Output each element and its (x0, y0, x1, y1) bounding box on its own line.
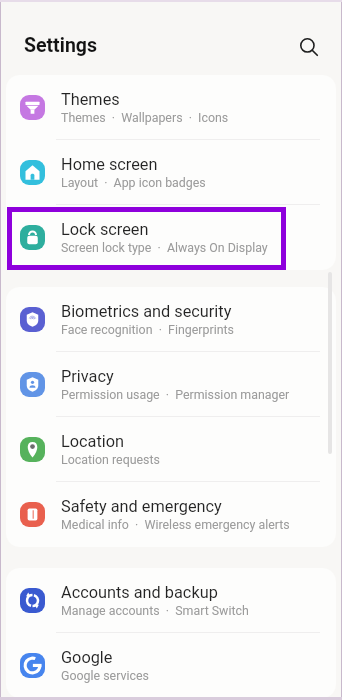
staticText: Settings (24, 34, 97, 57)
button[interactable]: Safety and emergency (6, 482, 336, 547)
staticText: Layout · App icon badges (61, 175, 206, 190)
button[interactable]: Privacy (6, 352, 336, 417)
staticText: Google (61, 648, 113, 667)
staticText: Manage accounts · Smart Switch (61, 603, 249, 618)
button[interactable]: Themes (6, 75, 336, 140)
button[interactable]: Google (6, 633, 336, 698)
button[interactable]: Home screen (6, 140, 336, 205)
staticText: Screen lock type · Always On Display (61, 240, 268, 255)
staticText: Location (61, 432, 125, 451)
staticText: Location requests (61, 452, 160, 467)
staticText: Privacy (61, 367, 114, 386)
staticText: Biometrics and security (61, 302, 232, 321)
button[interactable]: Location (6, 417, 336, 482)
button[interactable]: Lock screen (6, 205, 336, 270)
staticText: Accounts and backup (61, 583, 218, 602)
staticText: Safety and emergency (61, 497, 222, 516)
staticText: Face recognition · Fingerprints (61, 322, 234, 337)
staticText: Google services (61, 668, 149, 683)
staticText: Lock screen (61, 220, 149, 239)
button[interactable]: Biometrics and security (6, 287, 336, 352)
staticText: Home screen (61, 155, 158, 174)
staticText: Themes (61, 90, 120, 109)
staticText: Permission usage · Permission manager (61, 387, 290, 402)
staticText: Medical info · Wireless emergency alerts (61, 517, 290, 532)
staticText: Themes · Wallpapers · Icons (61, 110, 229, 125)
button[interactable]: Accounts and backup (6, 568, 336, 633)
button[interactable]: Search (293, 31, 325, 63)
